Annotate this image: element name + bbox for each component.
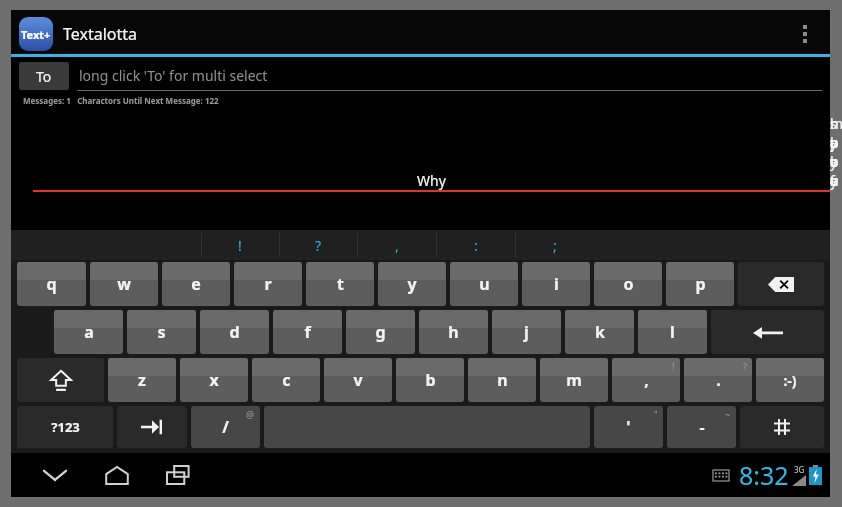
button[interactable]: q (17, 262, 86, 306)
staticText: h (448, 321, 459, 343)
staticText: n (497, 369, 508, 391)
button[interactable]: d (200, 310, 269, 354)
staticText: a (84, 321, 94, 343)
staticText: l (670, 321, 675, 343)
staticText: i (554, 273, 559, 295)
button[interactable]: z (108, 358, 176, 402)
button[interactable]: e (162, 262, 230, 306)
button[interactable]: j (492, 310, 561, 354)
button[interactable]: b (396, 358, 464, 402)
staticText: Messages: 1 Charactors Until Next Messag… (23, 95, 219, 106)
button[interactable]: a (54, 310, 123, 354)
button[interactable]: p (666, 262, 734, 306)
staticText: p (695, 273, 706, 295)
button[interactable]: . (684, 358, 752, 402)
staticText: @ (246, 408, 255, 420)
button[interactable]: Keyboard settings (740, 406, 824, 448)
staticText: b (425, 369, 436, 391)
button[interactable]: ? (279, 230, 357, 260)
staticText: f (304, 321, 311, 343)
staticText: g (375, 321, 386, 343)
staticText: , (644, 369, 649, 391)
button[interactable]: t (306, 262, 374, 306)
button[interactable]: u (450, 262, 518, 306)
button[interactable]: v (324, 358, 392, 402)
staticText: long click 'To' for multi select (79, 66, 268, 85)
staticText: 3G (794, 464, 805, 475)
staticText: ~ (725, 408, 731, 420)
staticText: ? (315, 236, 322, 255)
staticText: q (46, 273, 57, 295)
button[interactable]: : (436, 230, 515, 260)
staticText: c (282, 369, 291, 391)
staticText: x (209, 369, 219, 391)
staticText: To (36, 67, 52, 86)
button[interactable]: n (468, 358, 536, 402)
staticText: Textalotta (63, 23, 138, 45)
staticText: m (566, 369, 582, 391)
button[interactable]: Shift (17, 358, 104, 402)
button[interactable]: , (357, 230, 436, 260)
button[interactable]: r (234, 262, 302, 306)
button[interactable]: w (90, 262, 158, 306)
staticText: Why (417, 171, 446, 190)
button[interactable]: - (667, 406, 736, 448)
button[interactable]: :-) (756, 358, 824, 402)
staticText: ' (626, 416, 631, 438)
button[interactable]: Home (95, 453, 139, 497)
staticText: ?123 (51, 418, 80, 436)
staticText: e (191, 273, 201, 295)
button[interactable]: Recent apps (157, 453, 201, 497)
button[interactable]: To (19, 62, 69, 90)
button[interactable]: s (127, 310, 196, 354)
staticText: o (623, 273, 634, 295)
button[interactable]: / (191, 406, 260, 448)
button[interactable]: long click 'To' for multi select (77, 60, 822, 91)
staticText: / (222, 416, 229, 438)
staticText: , (395, 236, 399, 255)
button[interactable]: h (419, 310, 488, 354)
staticText: t (337, 273, 344, 295)
button[interactable]: ; (515, 230, 594, 260)
staticText: v (353, 369, 363, 391)
button[interactable]: y (378, 262, 446, 306)
staticText: j (524, 321, 529, 343)
staticText: d (229, 321, 240, 343)
staticText: ! (672, 360, 675, 372)
staticText: . (716, 369, 721, 391)
button[interactable]: Backspace (738, 262, 824, 306)
button[interactable]: x (180, 358, 248, 402)
button[interactable]: g (346, 310, 415, 354)
staticText: w (117, 273, 131, 295)
button[interactable]: More options (788, 10, 822, 57)
staticText: :-) (783, 371, 797, 390)
button[interactable]: k (565, 310, 634, 354)
staticText: : (474, 236, 478, 255)
button[interactable]: f (273, 310, 342, 354)
button[interactable]: m (540, 358, 608, 402)
staticText: y (407, 273, 417, 295)
staticText: u (479, 273, 490, 295)
button[interactable]: c (252, 358, 320, 402)
button[interactable]: l (638, 310, 707, 354)
button[interactable]: o (594, 262, 662, 306)
staticText: ! (238, 236, 242, 255)
staticText: ? (743, 360, 747, 372)
button[interactable]: ' (594, 406, 663, 448)
button[interactable]: Hide keyboard (33, 453, 77, 497)
staticText: k (595, 321, 605, 343)
staticText: " (654, 408, 658, 420)
button[interactable]: , (612, 358, 680, 402)
button[interactable]: Tab (117, 406, 187, 448)
button[interactable]: Enter (711, 310, 824, 354)
button[interactable]: ! (201, 230, 279, 260)
staticText: s (157, 321, 166, 343)
button[interactable]: ?123 (17, 406, 113, 448)
staticText: r (264, 273, 272, 295)
staticText: 8:32 (739, 458, 789, 492)
button[interactable]: i (522, 262, 590, 306)
staticText: - (699, 416, 705, 438)
staticText: ; (553, 236, 557, 255)
staticText: z (138, 369, 146, 391)
